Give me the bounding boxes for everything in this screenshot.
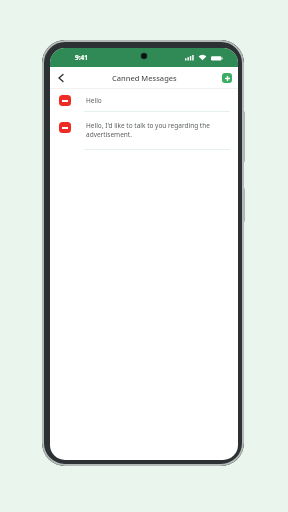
staticText: Canned Messages (112, 73, 177, 83)
button[interactable] (222, 73, 232, 83)
button[interactable] (54, 70, 68, 86)
button[interactable]: Hello, I'd like to talk to you regarding… (50, 112, 238, 149)
staticText: Hello (86, 96, 102, 105)
button[interactable]: Hello (50, 89, 238, 111)
staticText: 9:41 (75, 53, 88, 62)
staticText: Hello, I'd like to talk to you regarding… (86, 121, 210, 139)
